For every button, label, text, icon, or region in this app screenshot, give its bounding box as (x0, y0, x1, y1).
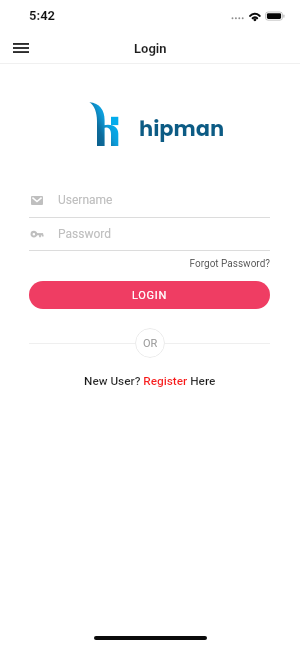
button[interactable]: Password (29, 220, 270, 250)
staticText: Login (134, 41, 167, 56)
staticText: Username (58, 193, 113, 207)
staticText: hipman (139, 114, 225, 143)
staticText: OR (143, 337, 158, 350)
button[interactable]: Open navigation menu (4, 34, 38, 62)
button[interactable]: Username (29, 186, 270, 216)
staticText: LOGIN (132, 289, 167, 302)
staticText: 5:42 (29, 8, 56, 23)
staticText: Password (58, 227, 112, 241)
staticText: Forgot Password? (189, 258, 270, 270)
button[interactable]: New User? Register Here (84, 374, 216, 388)
button[interactable]: Forgot Password? (180, 256, 270, 272)
button[interactable]: LOGIN (29, 281, 270, 309)
